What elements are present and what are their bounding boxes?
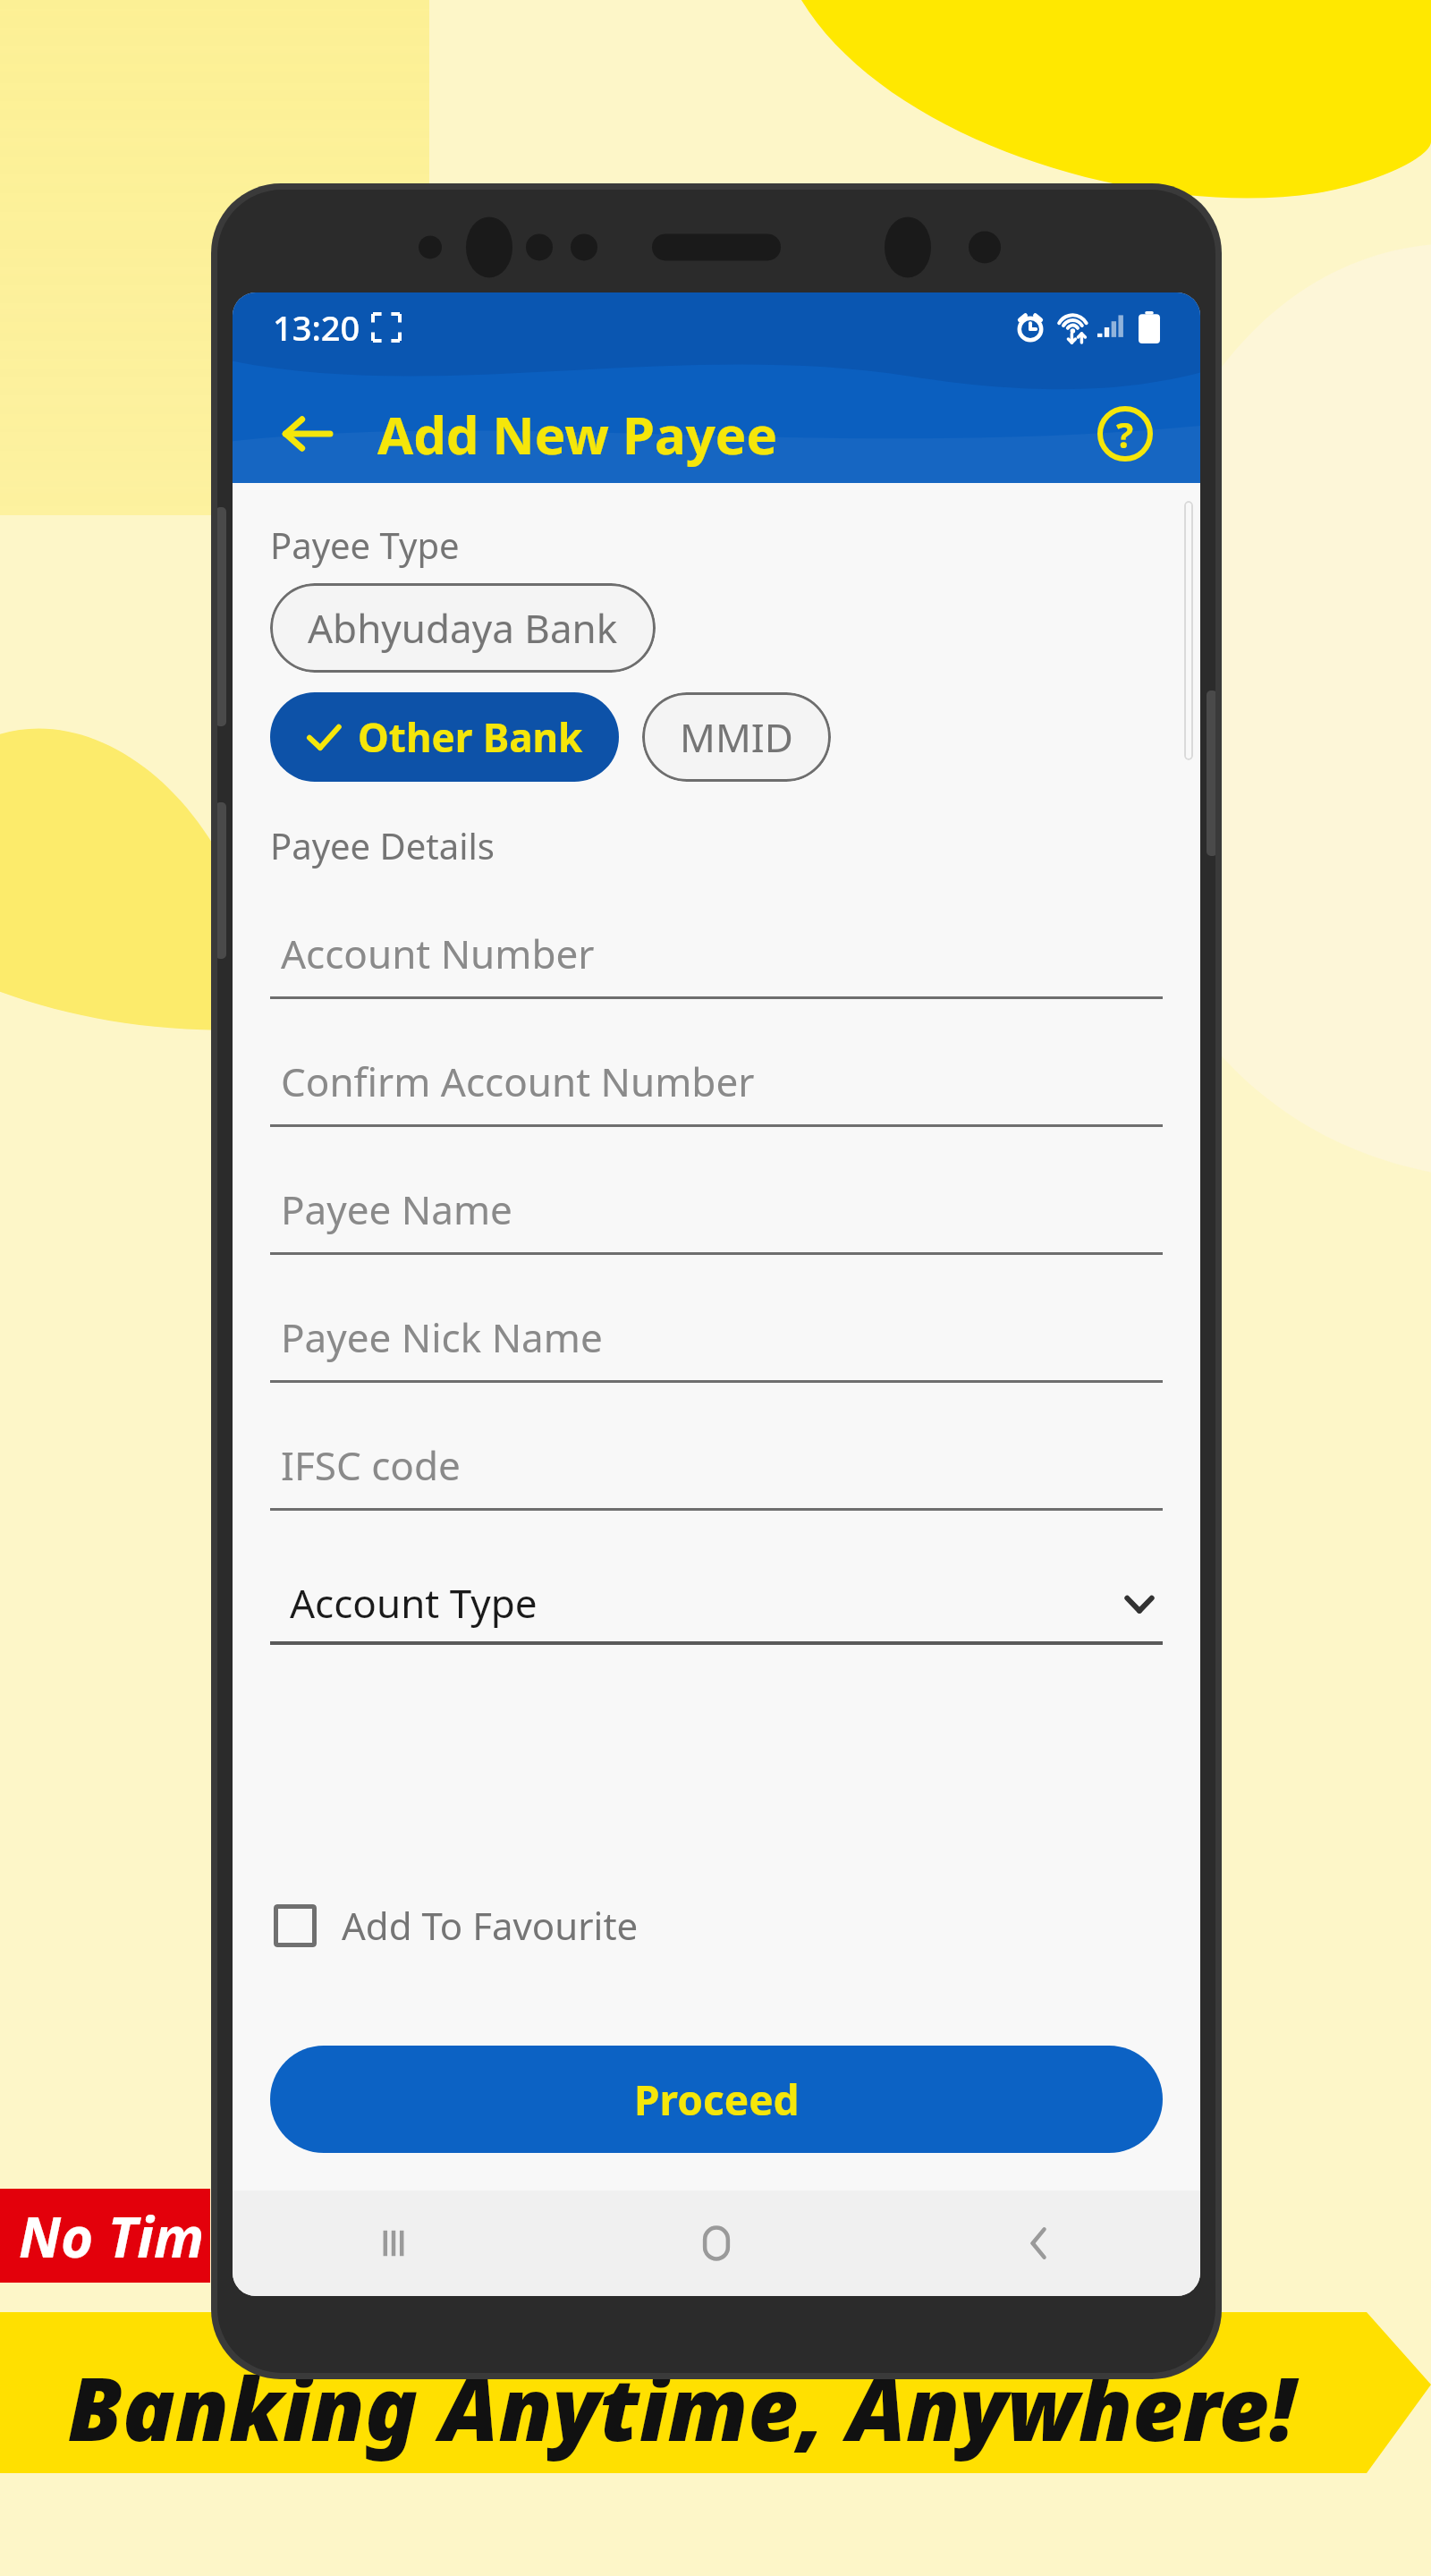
button[interactable]: IFSC code (270, 1422, 1163, 1550)
button[interactable]: Help (1088, 396, 1163, 471)
staticText: No Tim (19, 2199, 205, 2274)
staticText: MMID (680, 710, 793, 764)
staticText: Payee Type (270, 521, 460, 569)
button[interactable]: Back (268, 396, 343, 471)
staticText: Payee Nick Name (281, 1310, 603, 1364)
staticText: Account Number (281, 927, 595, 980)
button[interactable]: Payee Nick Name (270, 1294, 1163, 1422)
button[interactable]: Other Bank (270, 692, 619, 782)
staticText: Add New Payee (377, 399, 778, 470)
button[interactable]: Recent apps (233, 2190, 555, 2296)
staticText: Proceed (634, 2072, 800, 2128)
button[interactable]: Back (877, 2190, 1200, 2296)
button[interactable]: Confirm Account Number (270, 1038, 1163, 1166)
staticText: Other Bank (358, 710, 583, 764)
staticText: Payee Name (281, 1182, 512, 1236)
button[interactable]: Proceed (270, 2046, 1163, 2153)
button[interactable]: Account Type (270, 1564, 1163, 1645)
button[interactable]: Account Number (270, 911, 1163, 1038)
staticText: Banking Anytime, Anywhere! (0, 2348, 1379, 2466)
button[interactable]: Add To Favourite (270, 1891, 642, 1960)
staticText: Account Type (290, 1576, 538, 1630)
staticText: Add To Favourite (342, 1900, 639, 1951)
button[interactable]: Payee Name (270, 1166, 1163, 1294)
staticText: Abhyudaya Bank (308, 601, 618, 655)
staticText: ? (1116, 410, 1134, 458)
staticText: 13:20 (273, 304, 360, 351)
button[interactable]: Abhyudaya Bank (270, 583, 656, 673)
button[interactable]: MMID (642, 692, 831, 782)
staticText: Payee Details (270, 821, 495, 869)
button[interactable]: Home (555, 2190, 877, 2296)
staticText: Confirm Account Number (281, 1055, 755, 1108)
staticText: IFSC code (281, 1438, 461, 1492)
